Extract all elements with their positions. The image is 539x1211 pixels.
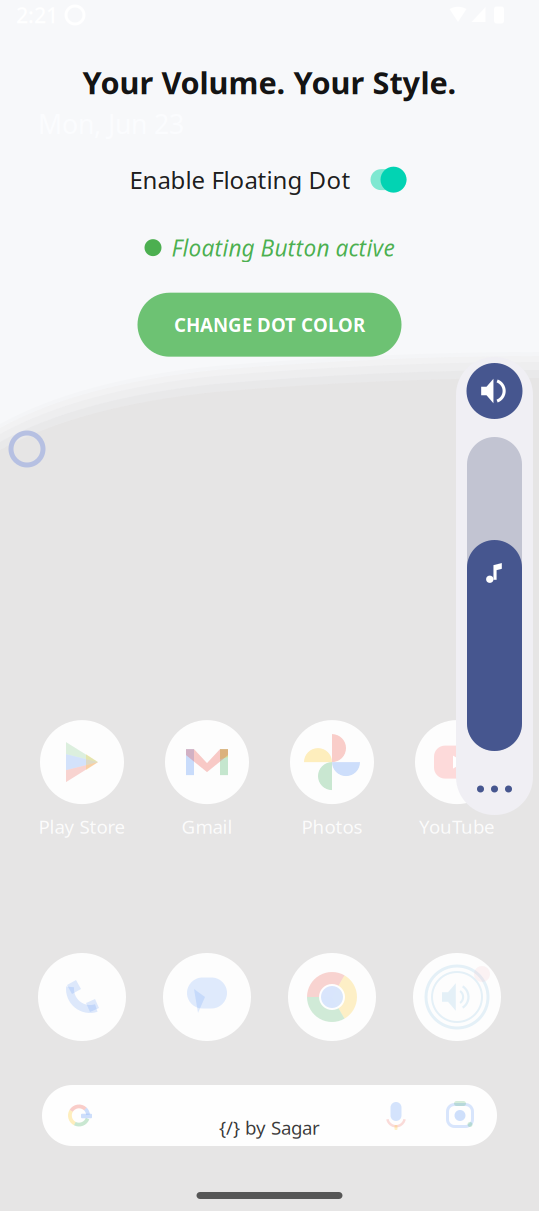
button[interactable]: Play Store <box>19 721 144 838</box>
button[interactable]: Messages <box>144 953 269 1041</box>
button[interactable]: Volume stream <box>466 363 522 419</box>
button[interactable]: Volume <box>394 953 519 1041</box>
button[interactable]: Photos <box>269 721 394 838</box>
button[interactable]: Search <box>42 1085 497 1146</box>
staticText: CHANGE DOT COLOR <box>174 312 365 337</box>
button[interactable]: Floating volume dot <box>5 427 49 471</box>
button[interactable]: Enable Floating Dot <box>365 165 409 195</box>
staticText: {/} by Sagar <box>219 1115 320 1140</box>
staticText: Enable Floating Dot <box>129 164 350 196</box>
staticText: Gmail <box>181 814 232 839</box>
staticText: Play Store <box>38 814 125 839</box>
staticText: Photos <box>301 814 362 839</box>
button[interactable]: Gmail <box>144 721 269 838</box>
button[interactable]: More volume options <box>456 751 533 827</box>
staticText: YouTube <box>419 814 495 839</box>
staticText: Your Volume. Your Style. <box>82 62 456 103</box>
button[interactable]: Phone <box>19 953 144 1041</box>
button[interactable]: YouTube <box>394 721 519 838</box>
staticText: Floating Button active <box>171 233 394 263</box>
button[interactable]: Chrome <box>269 953 394 1041</box>
button[interactable]: CHANGE DOT COLOR <box>137 293 401 357</box>
